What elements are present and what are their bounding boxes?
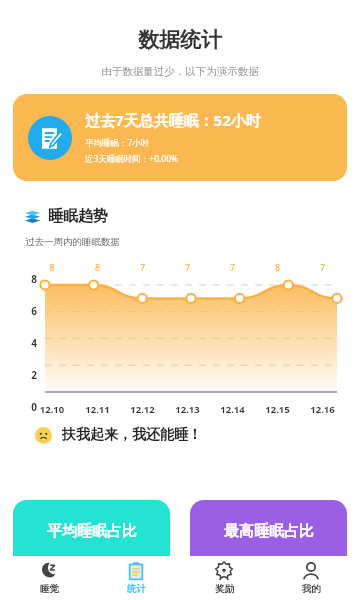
staticText: 数据统计 <box>0 27 360 53</box>
button[interactable]: 我的 <box>272 556 350 600</box>
staticText: 12.11 <box>75 403 120 416</box>
staticText: 扶我起来，我还能睡！ <box>62 426 202 444</box>
other: 统计 <box>127 562 145 580</box>
staticText: 7 <box>210 261 255 273</box>
staticText: 8 <box>17 272 37 286</box>
staticText: 0 <box>17 400 37 414</box>
staticText: 12.10 <box>29 403 75 416</box>
button[interactable]: 统计 <box>97 556 175 600</box>
staticText: 2 <box>17 368 37 382</box>
other: 我的 <box>302 562 320 580</box>
staticText: 最高睡眠占比 <box>224 522 314 541</box>
button[interactable]: 过去7天总共睡眠：52小时 <box>13 94 347 181</box>
staticText: 7 <box>165 261 210 273</box>
button[interactable]: 平均睡眠占比 <box>13 500 170 580</box>
staticText: 睡觉 <box>40 583 59 595</box>
staticText: 奖励 <box>215 583 234 595</box>
staticText: 12.12 <box>120 403 165 416</box>
staticText: 近3天睡眠时间：+0.00% <box>85 153 179 165</box>
staticText: 8 <box>75 261 120 273</box>
other: 奖励 <box>215 562 233 580</box>
other: 睡觉 <box>40 562 58 580</box>
staticText: 7 <box>120 261 165 273</box>
button[interactable]: 奖励 <box>185 556 263 600</box>
staticText: 8 <box>255 261 300 273</box>
staticText: 过去7天总共睡眠：52小时 <box>85 110 261 130</box>
staticText: 由于数据量过少，以下为演示数据 <box>0 65 360 78</box>
button[interactable]: 最高睡眠占比 <box>190 500 347 580</box>
staticText: 睡眠趋势 <box>48 207 108 226</box>
staticText: 6 <box>17 304 37 318</box>
staticText: 7 <box>300 261 345 273</box>
staticText: 8 <box>29 261 75 273</box>
staticText: 12.14 <box>210 403 255 416</box>
staticText: 平均睡眠占比 <box>47 522 137 541</box>
staticText: 12.13 <box>165 403 210 416</box>
staticText: 4 <box>17 336 37 350</box>
staticText: 我的 <box>302 583 321 595</box>
button[interactable]: 睡觉 <box>10 556 88 600</box>
staticText: 12.15 <box>255 403 300 416</box>
button[interactable]: 睡眠趋势 <box>13 194 347 479</box>
staticText: 12.16 <box>300 403 345 416</box>
staticText: 统计 <box>127 583 146 595</box>
staticText: 平均睡眠：7小时 <box>85 137 150 149</box>
staticText: 过去一周内的睡眠数据 <box>25 236 120 248</box>
